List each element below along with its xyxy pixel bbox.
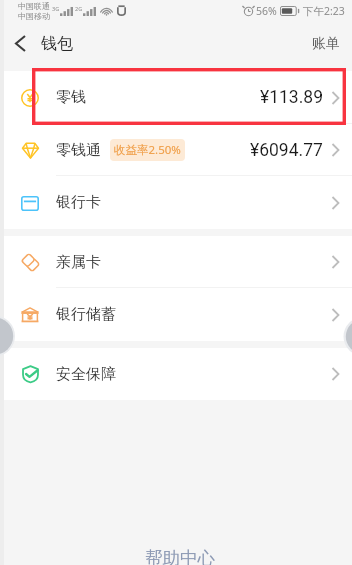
button[interactable]: 银行卡 [0, 176, 352, 229]
staticText: 中国移动 [18, 11, 50, 21]
staticText: 账单 [312, 35, 340, 53]
button[interactable]: 帮助中心 [4, 547, 352, 565]
button[interactable]: 亲属卡 [0, 236, 352, 288]
button[interactable]: 零钱通 [0, 124, 352, 176]
staticText: 2G [75, 5, 83, 12]
staticText: 56% [256, 4, 277, 18]
staticText: 零钱 [56, 88, 86, 107]
staticText: 零钱通 [56, 141, 101, 160]
staticText: 收益率2.50% [114, 142, 181, 158]
staticText: ¥6094.77 [250, 140, 323, 161]
button[interactable]: 零钱 [0, 71, 352, 124]
staticText: 3G [52, 5, 60, 12]
staticText: 银行储蓄 [56, 305, 116, 324]
staticText: 安全保障 [56, 365, 116, 384]
button[interactable]: 返回 [0, 23, 41, 64]
staticText: 下午2:23 [303, 4, 345, 18]
staticText: 帮助中心 [145, 547, 215, 565]
button[interactable]: 安全保障 [0, 348, 352, 400]
button[interactable]: 账单 [305, 26, 347, 62]
staticText: 银行卡 [56, 193, 101, 212]
staticText: 中国联通 [18, 1, 50, 11]
staticText: 亲属卡 [56, 253, 101, 272]
staticText: 钱包 [41, 34, 73, 54]
staticText: ¥113.89 [260, 87, 323, 108]
button[interactable]: 银行储蓄 [0, 288, 352, 341]
